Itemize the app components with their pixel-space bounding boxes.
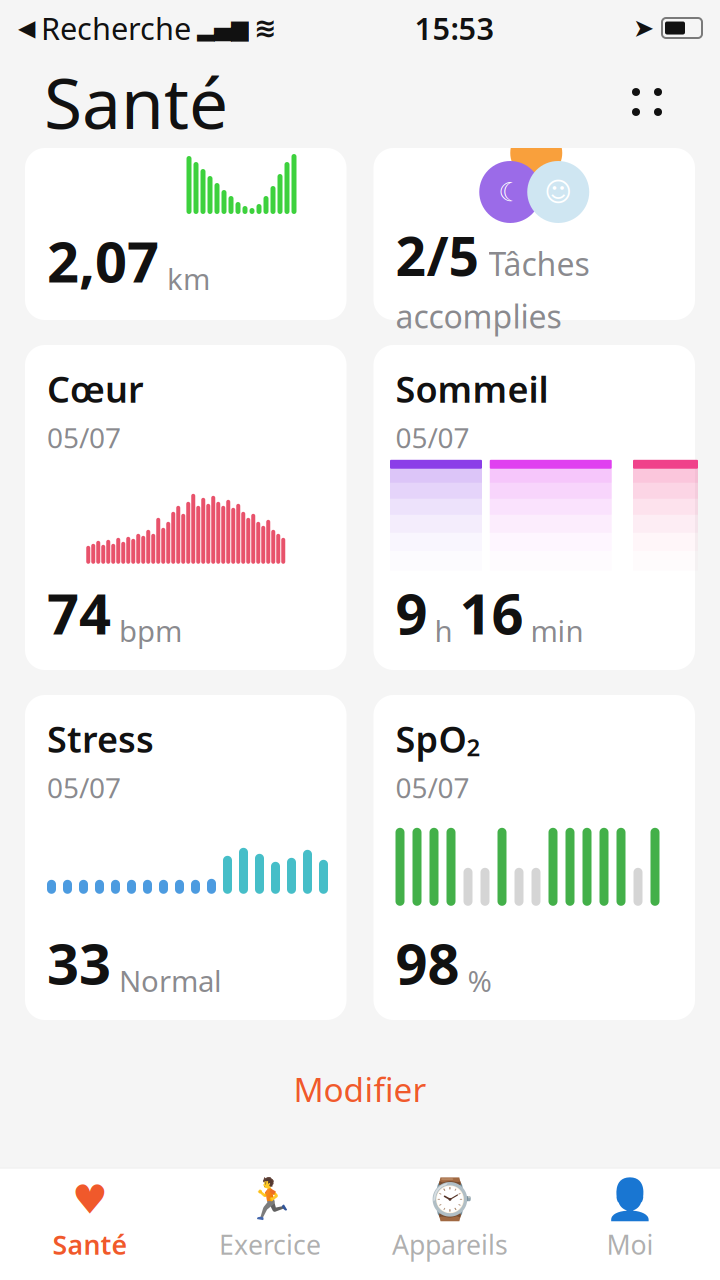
- staticText: ☺: [544, 177, 572, 207]
- staticText: Normal: [119, 961, 222, 1000]
- staticText: ▂▄▆: [197, 15, 248, 41]
- staticText: ⌚: [425, 1177, 475, 1222]
- staticText: h: [434, 611, 452, 650]
- staticText: 05/07: [395, 769, 469, 806]
- staticText: Tâches: [488, 242, 589, 285]
- staticText: 05/07: [47, 419, 121, 456]
- staticText: ≋: [254, 13, 276, 43]
- staticText: 🏃: [245, 1177, 295, 1222]
- staticText: ◀: [18, 15, 35, 41]
- staticText: ☾: [498, 177, 522, 207]
- button[interactable]: Menu: [618, 74, 676, 130]
- button[interactable]: Stress: [25, 695, 346, 1020]
- staticText: 05/07: [47, 769, 121, 806]
- staticText: 98: [395, 926, 459, 1000]
- button[interactable]: Modifier: [25, 1045, 695, 1133]
- staticText: 74: [47, 576, 111, 650]
- staticText: Sommeil: [395, 365, 548, 413]
- staticText: SpO: [395, 715, 466, 763]
- staticText: 2: [466, 731, 480, 763]
- button[interactable]: Cœur: [25, 345, 346, 670]
- staticText: Exercice: [219, 1227, 321, 1262]
- staticText: Stress: [47, 715, 154, 763]
- button[interactable]: Appareils: [360, 1169, 540, 1280]
- staticText: Santé: [52, 1227, 127, 1262]
- staticText: 👤: [605, 1177, 655, 1222]
- button[interactable]: Santé: [0, 1169, 180, 1280]
- button[interactable]: Sommeil: [373, 345, 695, 670]
- staticText: 15:53: [414, 8, 494, 48]
- button[interactable]: ☾: [373, 148, 695, 320]
- button[interactable]: Moi: [540, 1169, 720, 1280]
- button[interactable]: 2,07: [25, 148, 346, 320]
- staticText: 9: [395, 576, 427, 650]
- staticText: bpm: [119, 611, 182, 650]
- staticText: min: [530, 611, 583, 650]
- staticText: km: [167, 259, 210, 298]
- staticText: ♥: [72, 1177, 108, 1222]
- staticText: Moi: [606, 1227, 653, 1262]
- staticText: 33: [47, 926, 111, 1000]
- staticText: Cœur: [47, 365, 144, 413]
- staticText: ➤: [633, 14, 654, 42]
- button[interactable]: SpO: [373, 695, 695, 1020]
- staticText: 2/5: [395, 220, 479, 291]
- staticText: Appareils: [392, 1227, 508, 1262]
- staticText: %: [467, 961, 491, 1000]
- staticText: Modifier: [293, 1067, 426, 1111]
- staticText: accomplies: [395, 295, 561, 337]
- staticText: 05/07: [395, 419, 469, 456]
- staticText: 16: [459, 576, 523, 650]
- button[interactable]: Exercice: [180, 1169, 360, 1280]
- staticText: Santé: [44, 56, 228, 148]
- staticText: 2,07: [47, 224, 159, 298]
- staticText: Recherche: [41, 8, 191, 48]
